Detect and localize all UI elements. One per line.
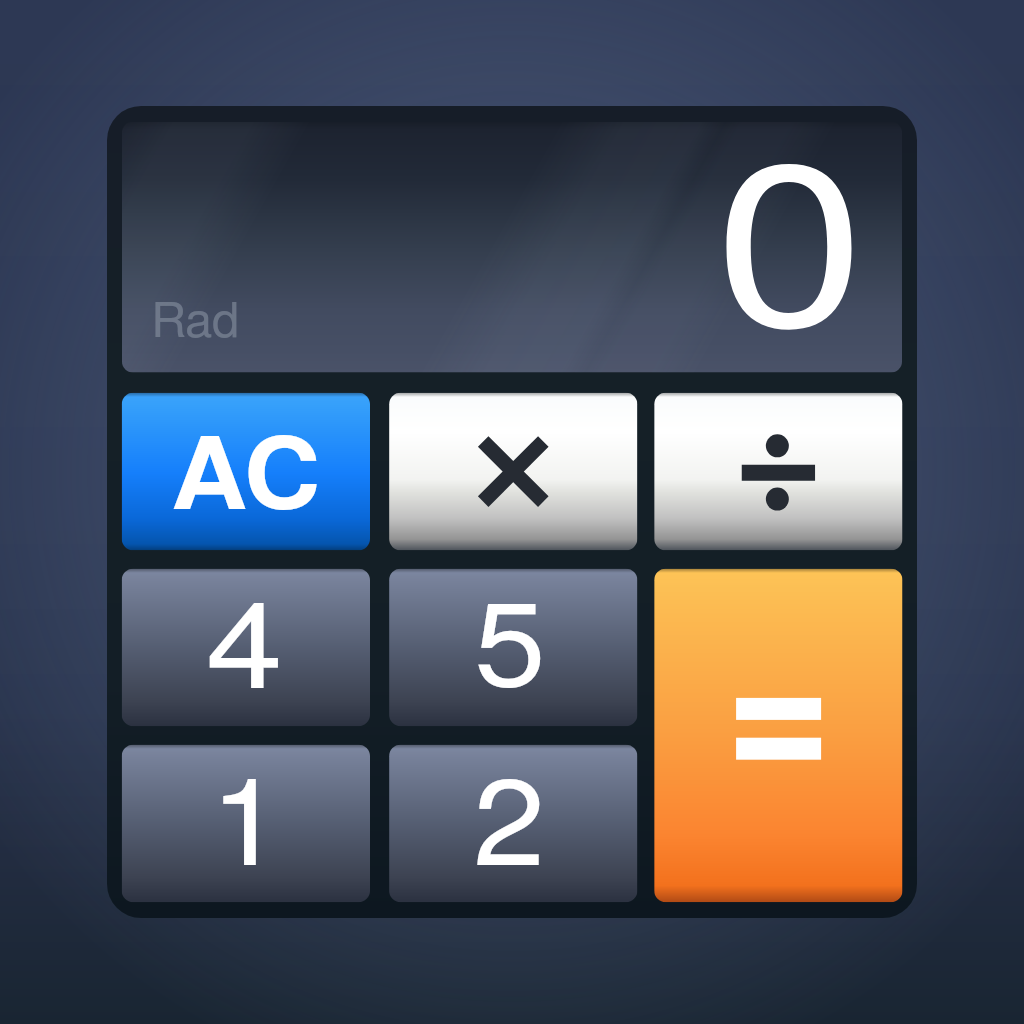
button[interactable]: 5 [389,569,637,727]
button[interactable]: 4 [122,569,370,727]
button[interactable]: Divide [654,393,902,551]
button[interactable]: 2 [389,745,637,903]
button[interactable]: AC [122,393,370,551]
button[interactable]: 1 [122,745,370,903]
button[interactable]: Multiply [389,393,637,551]
button[interactable]: Equals [654,569,902,903]
